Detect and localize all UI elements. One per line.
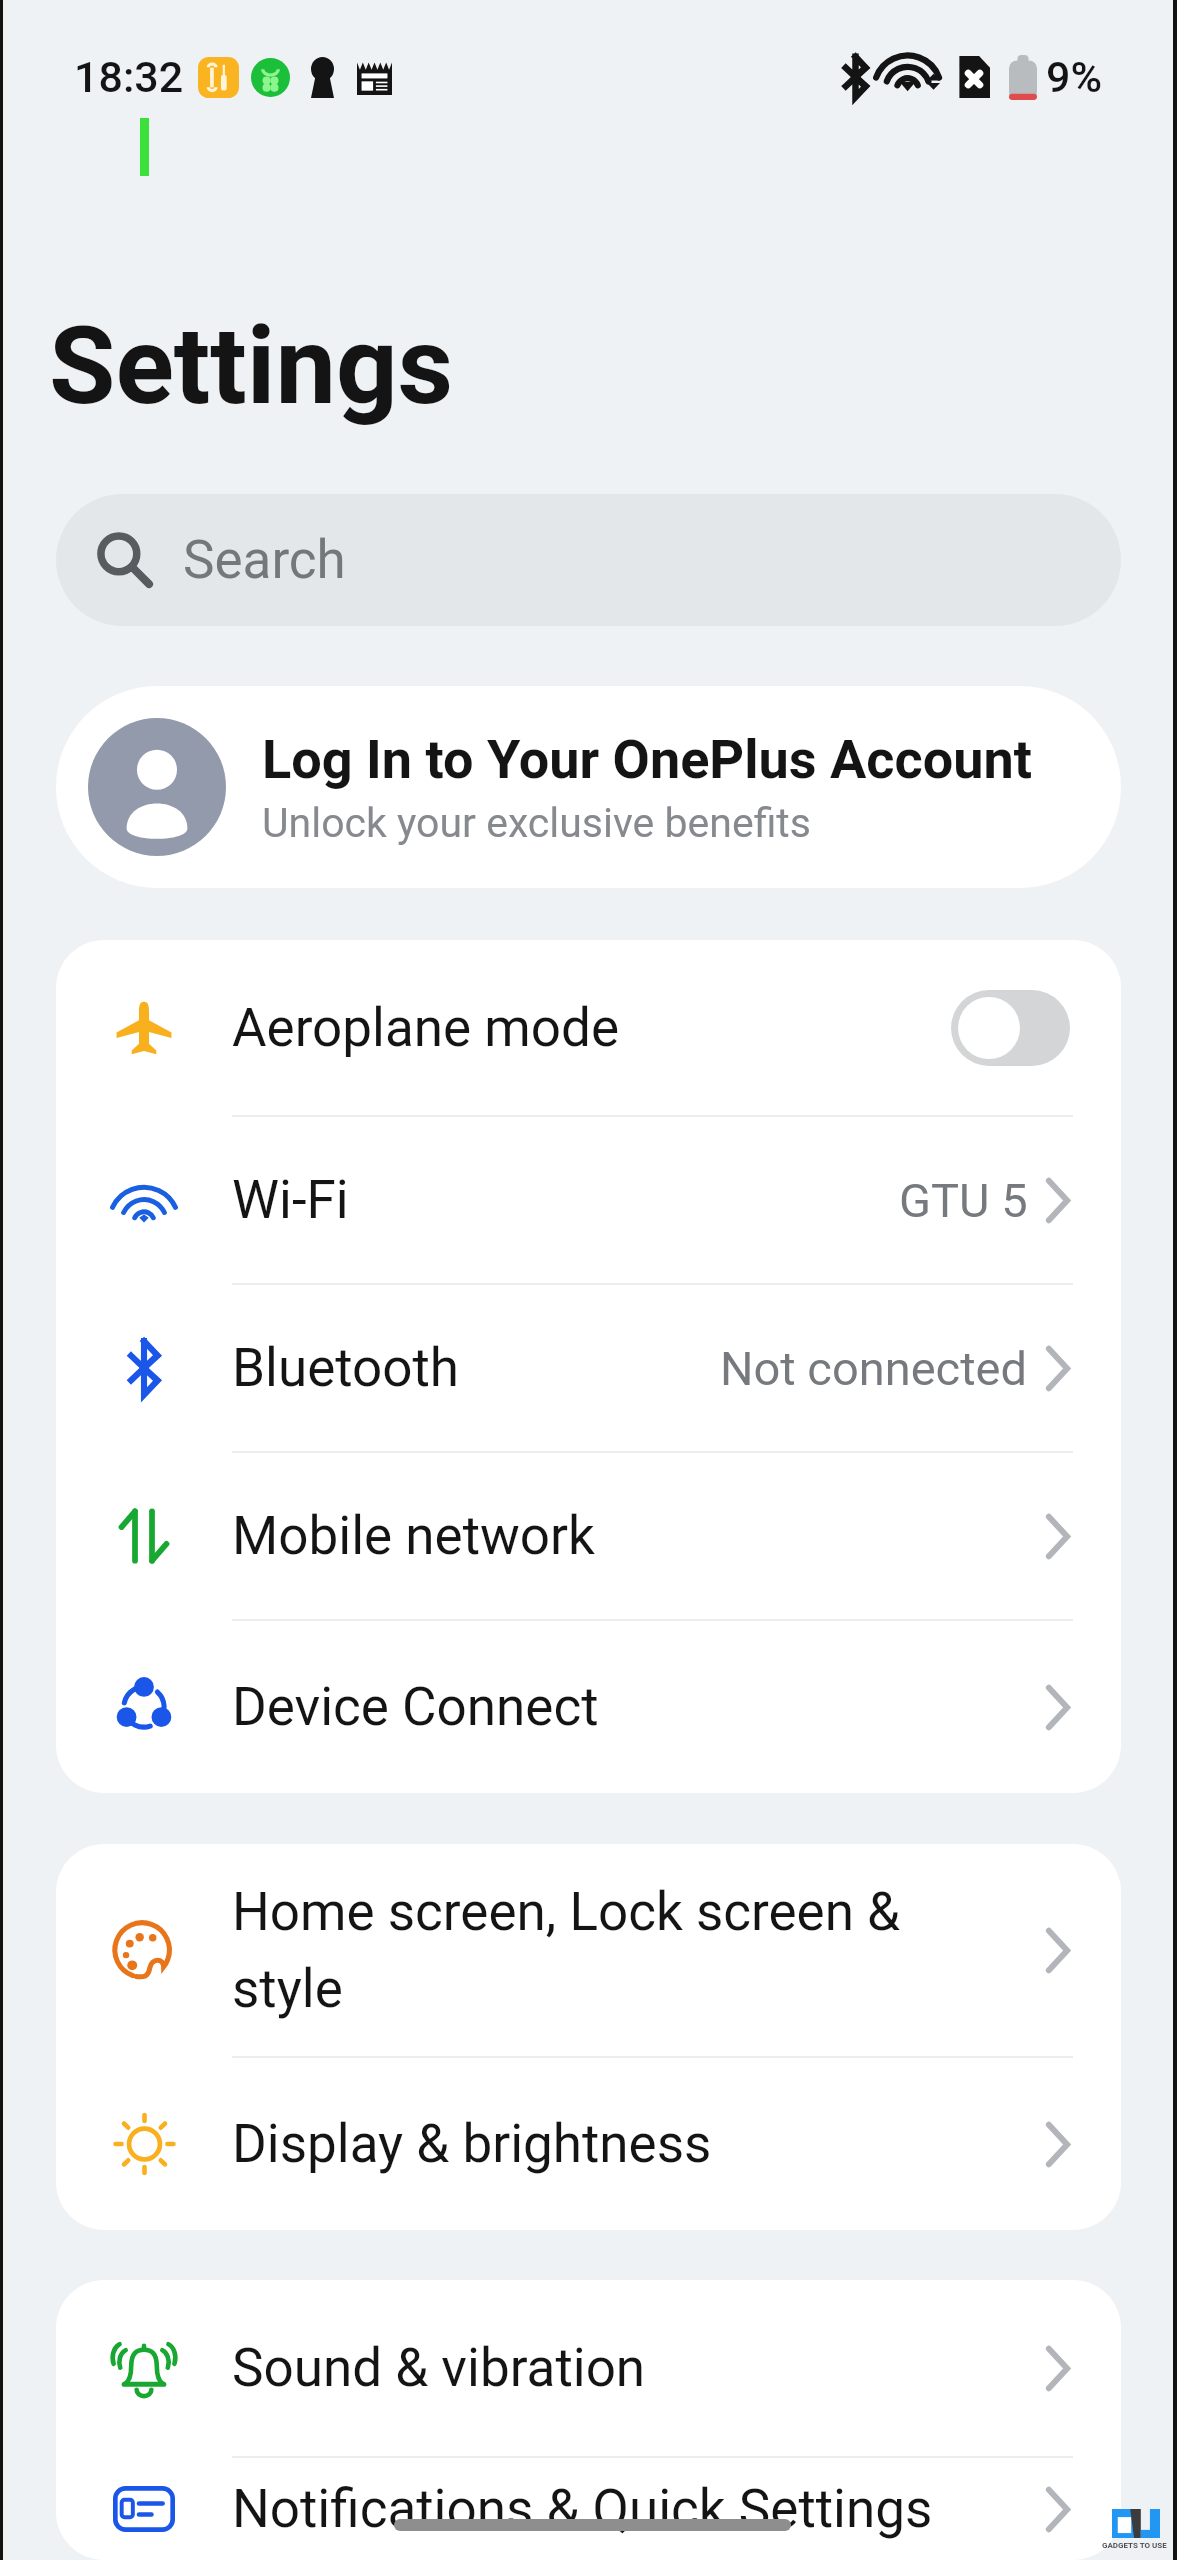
staticText: 18:32 bbox=[74, 52, 184, 102]
button[interactable]: Display & brightness bbox=[56, 2058, 1121, 2230]
button[interactable]: Sound & vibration bbox=[56, 2280, 1121, 2456]
button[interactable]: Home screen, Lock screen & style bbox=[56, 1844, 1121, 2056]
button[interactable]: Wi-Fi bbox=[56, 1117, 1121, 1283]
staticText: Bluetooth bbox=[232, 1337, 720, 1399]
staticText: GADGETS TO USE bbox=[1102, 2541, 1167, 2550]
button[interactable]: Search bbox=[56, 494, 1121, 626]
staticText: Display & brightness bbox=[232, 2113, 1046, 2175]
staticText: Aeroplane mode bbox=[232, 997, 951, 1059]
staticText: Notifications & Quick Settings bbox=[232, 2478, 1046, 2540]
button[interactable]: Mobile network bbox=[56, 1453, 1121, 1619]
staticText: GTU 5 bbox=[899, 1173, 1028, 1228]
staticText: Wi-Fi bbox=[232, 1169, 899, 1231]
staticText: Unlock your exclusive benefits bbox=[262, 799, 811, 847]
button[interactable]: Device Connect bbox=[56, 1621, 1121, 1793]
staticText: Not connected bbox=[720, 1341, 1028, 1396]
staticText: Settings bbox=[49, 303, 454, 430]
staticText: Sound & vibration bbox=[232, 2337, 1046, 2399]
staticText: Mobile network bbox=[232, 1505, 1046, 1567]
button[interactable]: Bluetooth bbox=[56, 1285, 1121, 1451]
staticText: Search bbox=[183, 529, 346, 591]
staticText: Home screen, Lock screen & style bbox=[232, 1881, 1046, 2020]
staticText: 9% bbox=[1046, 52, 1103, 102]
button[interactable]: Aeroplane mode toggle bbox=[951, 990, 1070, 1066]
button[interactable]: Log In to Your OnePlus Account bbox=[56, 686, 1121, 888]
button[interactable]: Aeroplane mode bbox=[56, 940, 1121, 1115]
staticText: Device Connect bbox=[232, 1676, 1046, 1738]
button[interactable]: Notifications & Quick Settings bbox=[56, 2458, 1121, 2560]
staticText: Log In to Your OnePlus Account bbox=[262, 728, 1032, 791]
